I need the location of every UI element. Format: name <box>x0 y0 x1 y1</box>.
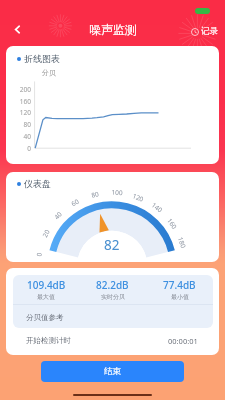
staticText: 实时分贝 <box>101 293 125 301</box>
staticText: 40 <box>11 132 31 141</box>
staticText: 0 <box>34 252 44 257</box>
staticText: 最大值 <box>37 293 55 301</box>
staticText: 00:00:01 <box>168 336 198 346</box>
button[interactable]: Back <box>9 21 26 38</box>
staticText: 噪声监测 <box>89 22 137 37</box>
staticText: 仪表盘 <box>24 178 51 189</box>
staticText: 结束 <box>104 366 121 377</box>
button[interactable]: 结束 <box>41 361 184 382</box>
staticText: 20 <box>40 228 52 239</box>
staticText: 120 <box>11 108 31 117</box>
staticText: 记录 <box>201 26 218 37</box>
staticText: 82 <box>104 236 120 254</box>
staticText: 0 <box>11 144 31 153</box>
staticText: 最小值 <box>171 293 189 301</box>
staticText: 120 <box>131 191 145 204</box>
staticText: 77.4dB <box>163 278 196 292</box>
staticText: 82.2dB <box>96 278 129 292</box>
staticText: 100 <box>111 188 123 197</box>
staticText: 80 <box>90 189 100 200</box>
staticText: 200 <box>11 85 31 94</box>
staticText: 160 <box>11 97 31 106</box>
staticText: 开始检测计时 <box>26 336 71 345</box>
staticText: 40 <box>52 209 64 221</box>
staticText: 140 <box>149 200 164 215</box>
staticText: 60 <box>69 197 81 208</box>
button[interactable]: 记录 <box>191 26 218 37</box>
staticText: 折线图表 <box>24 53 60 64</box>
staticText: 分贝值参考 <box>26 313 64 322</box>
staticText: 109.4dB <box>27 278 66 292</box>
staticText: 分贝 <box>42 68 56 77</box>
staticText: 80 <box>11 120 31 129</box>
staticText: 180 <box>176 235 188 250</box>
staticText: 160 <box>165 216 179 231</box>
